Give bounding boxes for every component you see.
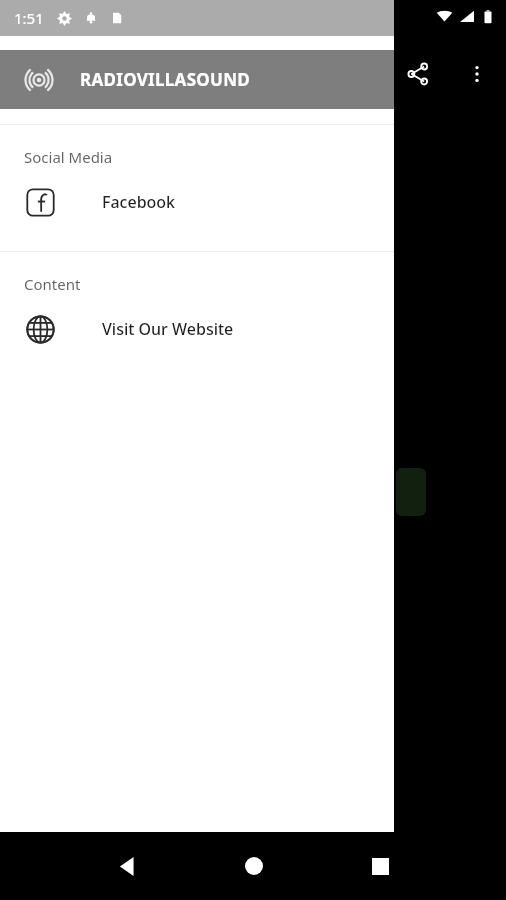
button[interactable]: Back xyxy=(108,847,146,885)
staticText: Visit Our Website xyxy=(102,318,234,340)
staticText: Facebook xyxy=(102,191,176,213)
staticText: RADIOVILLASOUND xyxy=(80,68,251,91)
button[interactable]: Home xyxy=(235,847,273,885)
button[interactable]: Recent apps xyxy=(361,847,399,885)
button[interactable]: More options xyxy=(455,52,499,96)
button[interactable]: Share xyxy=(396,52,440,96)
staticText: Social Media xyxy=(24,147,113,167)
staticText: Content xyxy=(24,274,81,294)
button[interactable]: Visit Our Website xyxy=(0,298,394,360)
button[interactable]: Facebook xyxy=(0,171,394,233)
button[interactable]: Radio station logo xyxy=(16,57,62,103)
staticText: 1:51 xyxy=(14,8,44,28)
